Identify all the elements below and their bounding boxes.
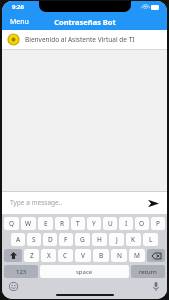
staticText: D — [48, 235, 53, 244]
button[interactable]: Menu — [2, 15, 37, 29]
staticText: H — [97, 235, 102, 244]
button[interactable]: J — [109, 233, 124, 246]
button[interactable]: F — [59, 233, 73, 246]
button[interactable]: Z — [24, 249, 39, 262]
staticText: 9:26 — [12, 3, 24, 11]
staticText: space — [76, 268, 93, 276]
staticText: Bienvenido al Asistente Virtual de TI — [25, 35, 135, 44]
button[interactable]: B — [93, 249, 109, 262]
button[interactable]: K — [126, 233, 141, 246]
staticText: B — [99, 251, 104, 260]
button[interactable]: R — [55, 217, 69, 230]
staticText: V — [81, 251, 85, 260]
button[interactable]: G — [75, 233, 90, 246]
button[interactable]: C — [58, 249, 73, 262]
staticText: G — [80, 235, 85, 244]
button[interactable]: N — [111, 249, 127, 262]
button[interactable]: X — [41, 249, 56, 262]
staticText: W — [25, 219, 32, 228]
button[interactable]: return — [131, 265, 165, 278]
staticText: J — [116, 235, 118, 244]
staticText: K — [131, 235, 136, 244]
button[interactable]: S — [27, 233, 41, 246]
staticText: O — [139, 219, 145, 228]
staticText: M — [134, 251, 140, 260]
button[interactable]: Shift — [4, 249, 22, 262]
staticText: F — [64, 235, 68, 244]
button[interactable]: Y — [87, 217, 101, 230]
staticText: Type a message.. — [10, 198, 63, 207]
button[interactable]: Emoji — [7, 280, 19, 292]
button[interactable]: I — [119, 217, 133, 230]
button[interactable]: P — [151, 217, 165, 230]
staticText: A — [16, 235, 21, 244]
button[interactable]: 123 — [4, 265, 38, 278]
button[interactable]: Bienvenido al Asistente Virtual de TI — [2, 30, 167, 49]
button[interactable]: W — [21, 217, 36, 230]
button[interactable]: V — [75, 249, 91, 262]
staticText: S — [32, 235, 36, 244]
button[interactable]: L — [143, 233, 158, 246]
staticText: Menu — [10, 17, 29, 27]
staticText: P — [156, 219, 160, 228]
staticText: N — [117, 251, 122, 260]
button[interactable]: D — [43, 233, 57, 246]
button[interactable]: E — [38, 217, 53, 230]
staticText: return — [139, 268, 157, 276]
staticText: Q — [9, 219, 15, 228]
staticText: R — [60, 219, 65, 228]
staticText: Y — [92, 219, 96, 228]
staticText: Z — [30, 251, 34, 260]
button[interactable]: H — [92, 233, 107, 246]
button[interactable]: Dictation — [150, 280, 162, 292]
staticText: 123 — [16, 268, 27, 276]
staticText: E — [44, 219, 48, 228]
button[interactable]: space — [40, 265, 129, 278]
staticText: T — [76, 219, 80, 228]
button[interactable]: U — [103, 217, 117, 230]
button[interactable]: Delete — [147, 249, 165, 262]
staticText: C — [63, 251, 68, 260]
button[interactable]: A — [11, 233, 25, 246]
button[interactable]: O — [135, 217, 149, 230]
staticText: U — [108, 219, 113, 228]
staticText: I — [125, 219, 128, 228]
button[interactable]: T — [71, 217, 85, 230]
staticText: X — [47, 251, 51, 260]
button[interactable]: M — [129, 249, 145, 262]
staticText: Contraseñas Bot — [54, 17, 116, 27]
staticText: L — [149, 235, 153, 244]
button[interactable]: Q — [4, 217, 19, 230]
button[interactable]: Send — [145, 195, 161, 211]
